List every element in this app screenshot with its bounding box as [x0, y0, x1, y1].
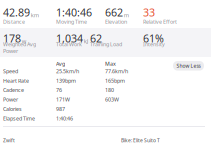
- staticText: Elapsed Time: [3, 115, 35, 122]
- staticText: 1:40:46: [56, 115, 73, 122]
- staticText: 61%: [143, 31, 164, 45]
- staticText: Calories: [3, 105, 22, 113]
- staticText: Intensity: [143, 40, 165, 48]
- staticText: 165bpm: [105, 77, 125, 84]
- staticText: Weighted Avg: [3, 40, 36, 48]
- staticText: 25.5km/h: [56, 67, 79, 75]
- staticText: 1,034: [56, 31, 83, 45]
- button[interactable]: Show Less: [173, 61, 204, 71]
- staticText: 171W: [56, 96, 70, 103]
- staticText: kJ: [84, 37, 89, 45]
- staticText: Show Less: [176, 62, 200, 69]
- staticText: 180: [105, 86, 114, 94]
- staticText: 178: [3, 31, 21, 45]
- staticText: Elevation: [105, 18, 127, 25]
- staticText: Speed: [3, 67, 18, 75]
- staticText: 77.6km/h: [105, 67, 128, 75]
- staticText: 987: [56, 105, 65, 113]
- staticText: Heart Rate: [3, 77, 29, 84]
- staticText: 662: [105, 5, 123, 19]
- staticText: Moving Time: [56, 18, 87, 25]
- staticText: Relative Effort: [143, 18, 177, 25]
- staticText: m: [124, 11, 129, 19]
- staticText: Zwift: [3, 137, 15, 144]
- staticText: Bike: Elite Suito T: [121, 137, 160, 144]
- staticText: Total Work: [56, 40, 82, 48]
- staticText: km: [31, 11, 39, 19]
- staticText: 62: [90, 31, 102, 45]
- staticText: Training Load: [90, 40, 122, 48]
- staticText: 33: [143, 5, 155, 19]
- staticText: Power: [3, 47, 18, 55]
- staticText: Avg: [56, 60, 65, 67]
- staticText: Distance: [3, 18, 25, 25]
- staticText: 42.89: [3, 5, 30, 19]
- staticText: 603W: [105, 96, 119, 103]
- staticText: Cadence: [3, 86, 24, 94]
- staticText: 76: [56, 86, 62, 94]
- staticText: Power: [3, 96, 18, 103]
- staticText: Max: [105, 60, 116, 67]
- staticText: w: [22, 37, 27, 45]
- staticText: 1:40:46: [56, 5, 92, 19]
- staticText: 139bpm: [56, 77, 76, 84]
